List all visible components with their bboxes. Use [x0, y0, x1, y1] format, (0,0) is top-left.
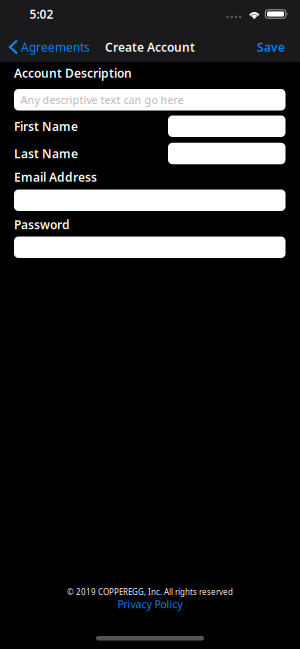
button[interactable]: Any descriptive text can go here: [14, 89, 285, 110]
button[interactable]: [14, 189, 285, 211]
button[interactable]: Privacy Policy: [117, 598, 182, 610]
staticText: Privacy Policy: [117, 597, 182, 611]
staticText: Password: [14, 216, 70, 232]
button[interactable]: [14, 236, 285, 258]
staticText: Agreements: [21, 39, 90, 55]
button[interactable]: [168, 143, 285, 164]
staticText: Create Account: [105, 39, 195, 55]
staticText: Any descriptive text can go here: [20, 93, 183, 107]
staticText: Account Description: [14, 65, 132, 81]
staticText: Email Address: [14, 169, 97, 185]
button[interactable]: Save: [257, 39, 300, 55]
staticText: Save: [257, 39, 285, 55]
button[interactable]: Agreements: [0, 39, 90, 55]
staticText: First Name: [14, 118, 78, 134]
staticText: © 2019 COPPEREGG, Inc. All rights reserv…: [67, 587, 233, 597]
button[interactable]: [168, 115, 285, 137]
staticText: 5:02: [29, 6, 53, 22]
staticText: Last Name: [14, 145, 78, 161]
